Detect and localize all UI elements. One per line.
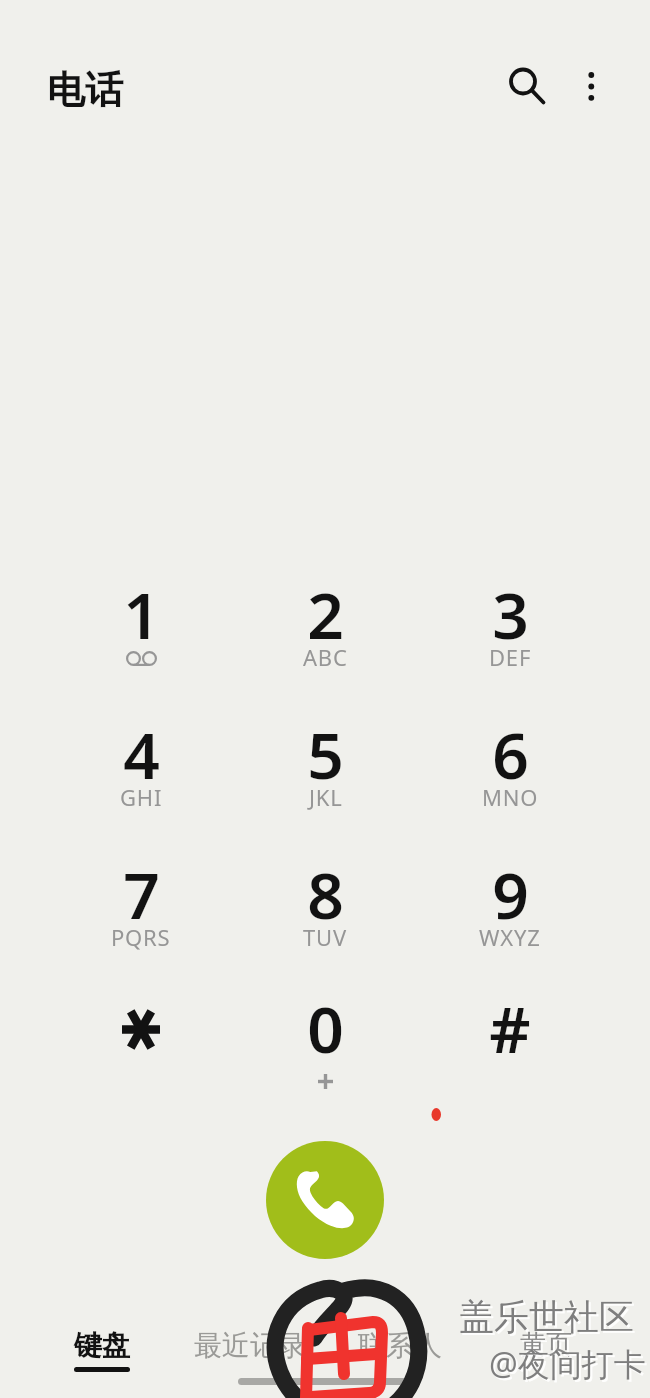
staticText: 9 [492, 851, 529, 938]
button[interactable]: 9 [418, 843, 602, 973]
button[interactable]: Search [491, 49, 555, 113]
staticText: MNO [482, 782, 539, 812]
button[interactable]: 0 [233, 977, 417, 1107]
staticText: 黄页 [520, 1328, 572, 1361]
staticText: 8 [307, 851, 344, 938]
button[interactable]: 6 [418, 703, 602, 833]
button[interactable]: # [418, 977, 602, 1107]
staticText: 6 [492, 711, 529, 798]
button[interactable]: 联系人 [325, 1310, 475, 1388]
staticText: ABC [303, 642, 348, 672]
button[interactable]: 键盘 [27, 1310, 177, 1388]
button[interactable] [49, 977, 233, 1107]
staticText: WXYZ [479, 922, 541, 952]
button[interactable]: More options [561, 56, 621, 116]
staticText: 2 [307, 571, 344, 658]
staticText: TUV [303, 922, 347, 952]
staticText: @夜间打卡 [489, 1342, 646, 1386]
staticText: 电话 [47, 66, 123, 114]
button[interactable]: 7 [49, 843, 233, 973]
staticText: 5 [307, 711, 344, 798]
button[interactable]: 8 [233, 843, 417, 973]
staticText: JKL [309, 782, 343, 812]
button[interactable]: 1 [49, 563, 233, 693]
staticText: 0 [307, 985, 344, 1072]
button[interactable]: 2 [233, 563, 417, 693]
staticText: 7 [123, 851, 160, 938]
staticText: 盖乐世社区 [461, 1297, 636, 1341]
button[interactable]: 最近记录 [175, 1310, 325, 1388]
staticText: 最近记录 [194, 1328, 306, 1363]
staticText: 黄页 [522, 1330, 574, 1363]
button[interactable]: 3 [418, 563, 602, 693]
staticText: # [489, 985, 531, 1072]
button[interactable]: 5 [233, 703, 417, 833]
staticText: 3 [492, 571, 529, 658]
staticText: 1 [123, 571, 160, 658]
staticText: 盖乐世社区 [459, 1295, 634, 1339]
staticText: @夜间打卡 [491, 1344, 648, 1388]
button[interactable]: Call [266, 1141, 384, 1259]
staticText: 4 [123, 711, 160, 798]
staticText: PQRS [111, 922, 171, 952]
staticText: 键盘 [74, 1328, 130, 1363]
staticText: DEF [489, 642, 532, 672]
staticText: 联系人 [358, 1328, 442, 1363]
button[interactable]: 4 [49, 703, 233, 833]
staticText: GHI [120, 782, 163, 812]
